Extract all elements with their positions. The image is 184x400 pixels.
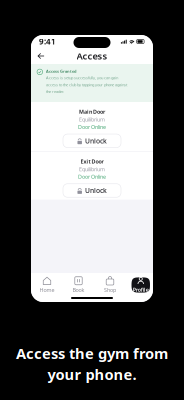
staticText: Unlock — [85, 136, 107, 145]
staticText: Equilibrium — [79, 166, 105, 173]
staticText: Access the gym from — [16, 343, 168, 363]
staticText: Main Door — [79, 108, 105, 115]
staticText: Door Online — [78, 173, 106, 180]
staticText: 9:41 — [39, 36, 56, 47]
staticText: your phone. — [47, 364, 136, 384]
button[interactable]: Unlock — [63, 184, 121, 197]
staticText: Profile — [133, 286, 149, 293]
staticText: Access Granted — [46, 68, 77, 74]
staticText: Home — [39, 286, 54, 293]
staticText: Access is setup successfully, you can ga… — [46, 75, 127, 94]
staticText: Book — [72, 286, 84, 293]
button[interactable]: Exit Door — [31, 152, 153, 200]
staticText: Shop — [104, 286, 116, 293]
staticText: Access — [76, 50, 107, 62]
button[interactable]: Unlock — [63, 134, 121, 147]
staticText: Equilibrium — [79, 116, 105, 123]
button[interactable]: Profile — [131, 277, 150, 293]
staticText: Exit Door — [80, 158, 103, 165]
staticText: Door Online — [78, 123, 106, 130]
button[interactable]: Back — [36, 51, 46, 61]
button[interactable]: Main Door — [31, 102, 153, 151]
button[interactable]: Book — [68, 276, 88, 293]
staticText: Unlock — [85, 186, 107, 195]
button[interactable]: Shop — [100, 276, 120, 293]
button[interactable]: Home — [37, 276, 57, 293]
